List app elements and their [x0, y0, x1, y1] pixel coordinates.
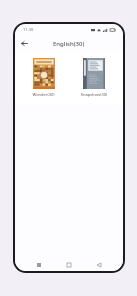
button[interactable]: Home [63, 259, 75, 271]
button[interactable]: Snapshots(30) [71, 55, 117, 100]
staticText: English(30) [53, 40, 85, 48]
staticText: Snapshots(30) [74, 92, 114, 97]
button[interactable]: Back [18, 37, 31, 50]
button[interactable]: Recents [33, 259, 45, 271]
staticText: Wonder(30) [24, 92, 63, 97]
button[interactable]: Wonder(30) [21, 55, 66, 100]
staticText: 11:30 [23, 27, 34, 32]
button[interactable]: Back [93, 259, 105, 271]
